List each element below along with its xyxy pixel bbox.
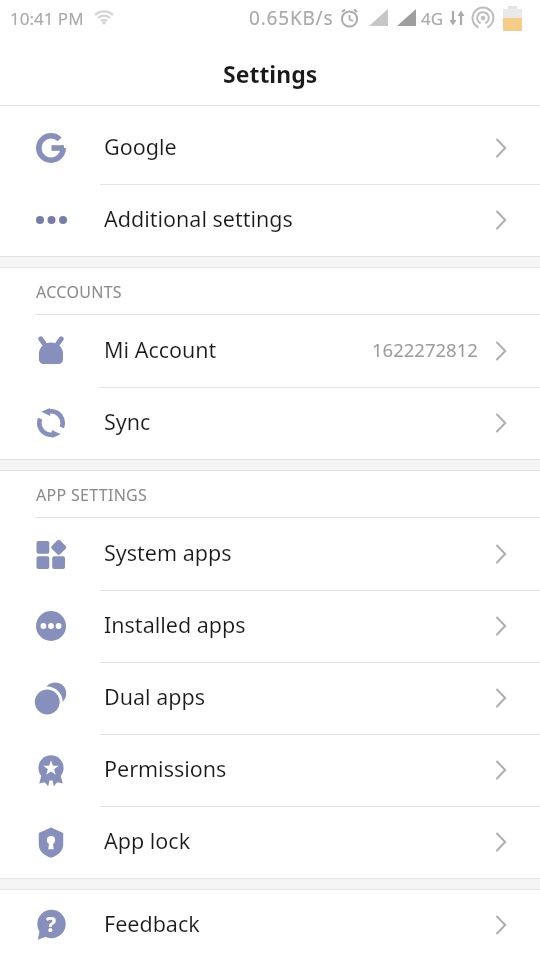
button[interactable]: Mi Account (0, 315, 540, 387)
staticText: Google (104, 132, 177, 161)
staticText: Permissions (104, 754, 227, 783)
staticText: ? (46, 910, 57, 937)
button[interactable]: Permissions (0, 734, 540, 806)
button[interactable]: Additional settings (0, 184, 540, 256)
staticText: 0.65KB/s (249, 5, 334, 31)
button[interactable]: App lock (0, 806, 540, 878)
button[interactable]: Installed apps (0, 590, 540, 662)
button[interactable]: ? (0, 890, 540, 960)
staticText: APP SETTINGS (36, 484, 148, 506)
staticText: Dual apps (104, 682, 205, 711)
staticText: ACCOUNTS (36, 281, 122, 303)
staticText: System apps (104, 538, 232, 567)
button[interactable]: Google (0, 112, 540, 184)
staticText: 10:41 PM (10, 7, 84, 30)
button[interactable]: Sync (0, 387, 540, 459)
staticText: Installed apps (104, 610, 246, 639)
staticText: Additional settings (104, 204, 293, 233)
staticText: Mi Account (104, 335, 217, 364)
staticText: Settings (223, 58, 318, 89)
button[interactable]: System apps (0, 518, 540, 590)
button[interactable]: Dual apps (0, 662, 540, 734)
staticText: App lock (104, 826, 191, 855)
staticText: Feedback (104, 909, 200, 938)
staticText: 4G (421, 7, 444, 30)
staticText: 1622272812 (372, 337, 478, 362)
staticText: Sync (104, 407, 151, 436)
